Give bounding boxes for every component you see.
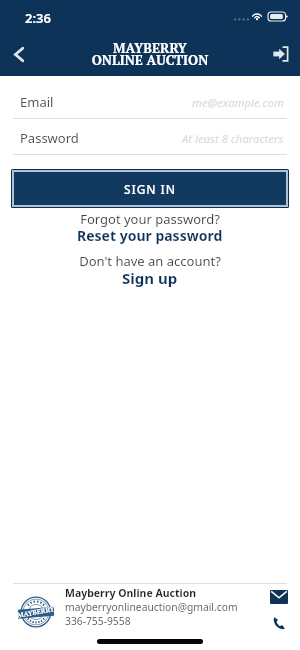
staticText: At least 8 characters [182,131,284,146]
button[interactable]: Sign in [266,39,296,69]
staticText: Email [20,93,54,111]
staticText: Reset your password [77,226,223,244]
staticText: Forgot your password? [0,210,300,228]
button[interactable]: Sign up [0,268,300,287]
staticText: MAYBERRY ONLINE AUCTION [0,39,300,69]
button[interactable]: Call us [263,609,295,635]
staticText: Sign up [122,268,178,287]
button[interactable]: Back [4,39,34,69]
staticText: SIGN IN [124,181,176,197]
button[interactable]: SIGN IN [14,172,286,205]
staticText: Don't have an account? [0,252,300,270]
staticText: Mayberry Online Auction [65,586,197,600]
button[interactable]: Email us [263,583,295,609]
button[interactable]: Reset your password [0,226,300,244]
staticText: 336-755-9558 [65,614,131,628]
staticText: 2:36 [25,9,51,27]
staticText: me@example.com [192,95,284,110]
staticText: Password [20,129,79,147]
staticText: mayberryonlineauction@gmail.com [65,600,238,614]
